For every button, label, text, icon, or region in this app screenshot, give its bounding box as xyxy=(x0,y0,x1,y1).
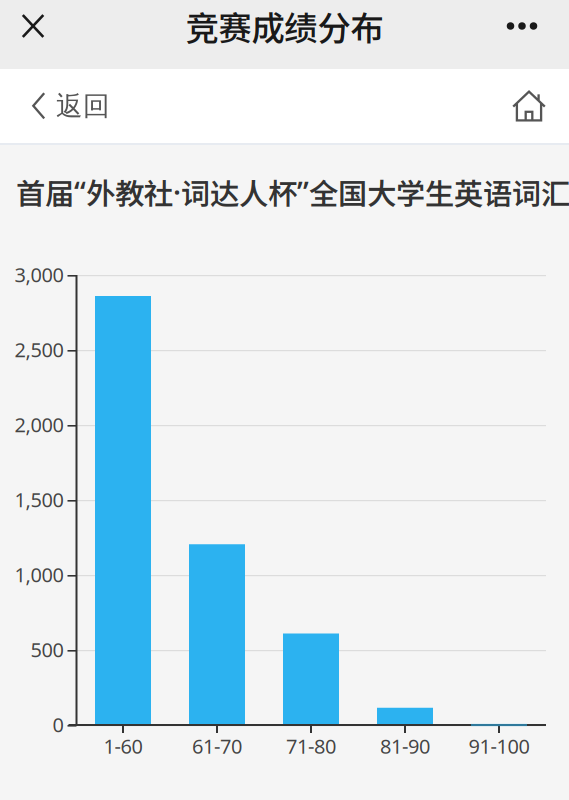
staticText: 2,500 xyxy=(14,336,63,363)
staticText: 2,000 xyxy=(14,411,63,438)
staticText: 返回 xyxy=(56,89,110,123)
staticText: 1,000 xyxy=(14,561,63,588)
button[interactable]: Close xyxy=(0,0,66,52)
button[interactable]: More options xyxy=(489,0,555,52)
staticText: 竞赛成绩分布 xyxy=(185,2,383,50)
button[interactable]: Home xyxy=(492,69,566,143)
staticText: 3,000 xyxy=(14,261,63,288)
staticText: 1,500 xyxy=(14,486,63,513)
staticText: 1-60 xyxy=(103,732,142,760)
staticText: 71-80 xyxy=(286,732,336,760)
staticText: 0 xyxy=(52,711,63,738)
staticText: 500 xyxy=(30,636,63,663)
staticText: 81-90 xyxy=(380,732,430,760)
staticText: 91-100 xyxy=(468,732,529,760)
staticText: 首届“外教社·词达人杯”全国大学生英语词汇能力大赛 xyxy=(16,171,569,213)
staticText: 61-70 xyxy=(192,732,242,760)
button[interactable]: 返回 xyxy=(0,69,128,143)
